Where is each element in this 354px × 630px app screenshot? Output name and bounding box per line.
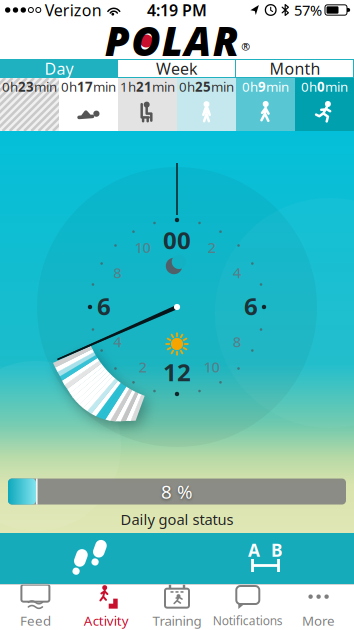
staticText: Feed <box>20 612 51 629</box>
staticText: More <box>302 612 335 629</box>
staticText: Month <box>269 58 320 79</box>
button[interactable]: 0h25min <box>177 78 236 131</box>
staticText: Verizon <box>45 0 102 21</box>
staticText: B <box>271 538 283 561</box>
staticText: Day <box>44 58 73 79</box>
staticText: 0h25min <box>179 78 234 95</box>
staticText: 0h17min <box>61 78 116 95</box>
staticText: 0h0min <box>301 78 348 95</box>
button[interactable]: Week <box>118 58 236 79</box>
staticText: 0h9min <box>242 78 289 95</box>
staticText: 00 <box>163 224 191 256</box>
staticText: 57% <box>294 0 322 20</box>
staticText: 4:19 PM <box>147 0 207 21</box>
button[interactable]: Activity <box>71 584 142 630</box>
staticText: Daily goal status <box>120 509 233 529</box>
staticText: 4 <box>233 263 241 282</box>
button[interactable]: Day <box>0 58 118 79</box>
button[interactable]: 0h23min <box>0 78 59 131</box>
staticText: 2 <box>207 237 215 257</box>
staticText: L <box>162 14 183 67</box>
staticText: A <box>248 538 260 561</box>
staticText: 6 <box>244 290 258 322</box>
staticText: Week <box>156 58 198 79</box>
staticText: 10 <box>134 237 150 257</box>
button[interactable]: 0h0min <box>295 78 354 131</box>
staticText: O <box>131 14 160 67</box>
staticText: R <box>213 14 239 67</box>
staticText: 1h21min <box>120 78 175 95</box>
staticText: 8 <box>233 332 241 351</box>
staticText: Notifications <box>213 612 283 628</box>
button[interactable]: 0h9min <box>236 78 295 131</box>
staticText: 6 <box>97 290 111 322</box>
button[interactable]: 0h17min <box>59 78 118 131</box>
staticText: Activity <box>84 612 129 629</box>
staticText: 0h23min <box>2 78 57 95</box>
staticText: Training <box>152 612 201 629</box>
button[interactable]: More <box>283 584 354 630</box>
staticText: A <box>184 14 211 67</box>
button[interactable]: 1h21min <box>118 78 177 131</box>
staticText: 8 <box>113 263 121 282</box>
button[interactable]: Notifications <box>212 584 283 630</box>
staticText: ® <box>241 39 250 54</box>
button[interactable]: Steps <box>0 533 177 584</box>
staticText: P <box>105 14 130 67</box>
staticText: 2 <box>138 357 146 376</box>
staticText: 4 <box>113 332 121 351</box>
button[interactable]: Training <box>142 584 212 630</box>
button[interactable]: Distance <box>177 533 354 584</box>
staticText: 12 <box>163 356 191 388</box>
button[interactable]: Month <box>236 58 354 79</box>
staticText: 10 <box>203 357 219 376</box>
staticText: 8 % <box>161 479 193 504</box>
button[interactable]: Feed <box>0 584 71 630</box>
